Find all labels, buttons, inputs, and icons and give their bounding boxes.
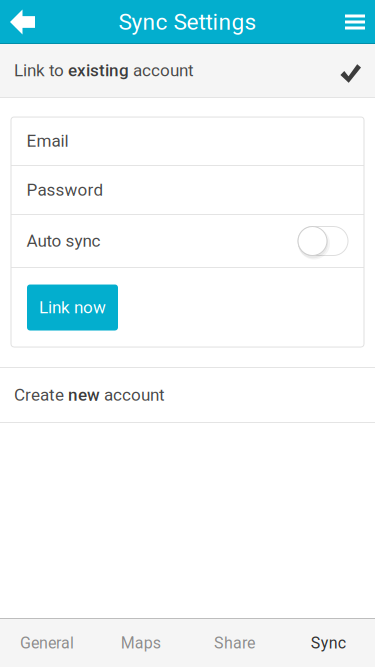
button[interactable]: Share: [187, 619, 281, 667]
staticText: account: [129, 60, 194, 80]
staticText: General: [20, 634, 74, 652]
staticText: Auto sync: [26, 231, 100, 251]
staticText: Share: [214, 634, 255, 652]
staticText: Sync Settings: [118, 9, 256, 35]
staticText: Link to: [14, 60, 68, 80]
staticText: Password: [26, 180, 103, 200]
button[interactable]: Back: [0, 0, 44, 44]
button[interactable]: Menu: [331, 0, 375, 44]
staticText: Sync: [311, 634, 346, 652]
button[interactable]: Maps: [94, 619, 188, 667]
staticText: Maps: [121, 634, 161, 652]
button[interactable]: Link now: [27, 284, 118, 330]
staticText: Email: [26, 131, 68, 151]
staticText: new: [68, 385, 100, 405]
staticText: Link now: [39, 297, 106, 317]
button[interactable]: Sync: [281, 619, 375, 667]
button[interactable]: Link to: [0, 44, 375, 98]
staticText: Create: [14, 385, 68, 405]
staticText: existing: [68, 60, 129, 80]
staticText: account: [100, 385, 165, 405]
button[interactable]: Auto sync: [298, 226, 348, 256]
button[interactable]: General: [0, 619, 94, 667]
button[interactable]: Create: [0, 367, 375, 423]
